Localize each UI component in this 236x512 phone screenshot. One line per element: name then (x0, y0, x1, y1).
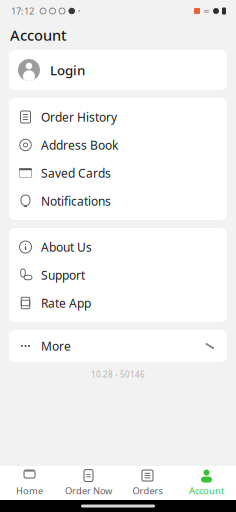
button[interactable]: Home (0, 466, 59, 500)
button[interactable]: Support (9, 261, 227, 289)
staticText: Address Book (41, 137, 118, 153)
button[interactable]: Order History (9, 103, 227, 131)
button[interactable]: Saved Cards (9, 159, 227, 187)
staticText: Orders (132, 485, 162, 497)
staticText: Order Now (65, 485, 112, 497)
staticText: ∞ (203, 6, 210, 16)
staticText: More (41, 338, 71, 354)
button[interactable]: Login (9, 50, 227, 90)
button[interactable]: About Us (9, 233, 227, 261)
staticText: Login (50, 61, 85, 79)
staticText: Account (10, 25, 67, 45)
staticText: Notifications (41, 193, 111, 209)
button[interactable]: Address Book (9, 131, 227, 159)
staticText: 17:12 (11, 5, 34, 17)
staticText: Saved Cards (41, 165, 111, 181)
button[interactable]: Account (177, 466, 236, 500)
staticText: About Us (41, 239, 92, 255)
button[interactable]: Notifications (9, 187, 227, 215)
staticText: Account (189, 485, 224, 497)
staticText: 10.28 - 50146 (91, 369, 145, 380)
button[interactable]: Rate App (9, 289, 227, 317)
staticText: Rate App (41, 295, 91, 311)
staticText: Home (16, 485, 43, 497)
button[interactable]: More (9, 330, 227, 362)
button[interactable]: Orders (118, 466, 177, 500)
staticText: Order History (41, 109, 117, 125)
staticText: Support (41, 267, 85, 283)
button[interactable]: Order Now (59, 466, 118, 500)
